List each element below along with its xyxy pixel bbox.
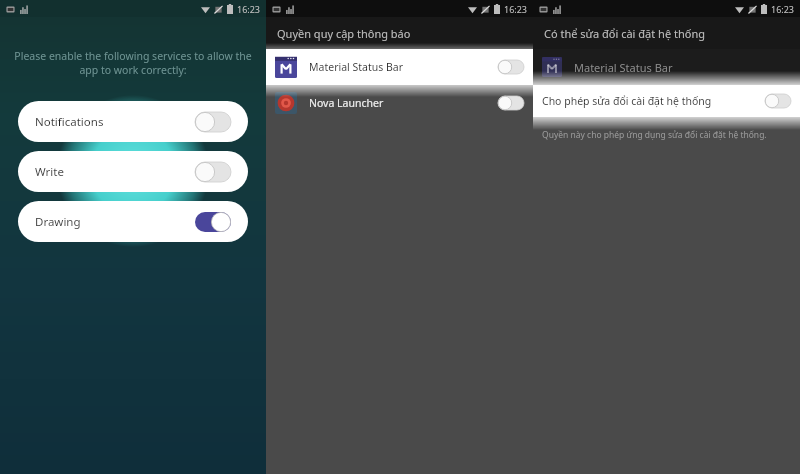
staticText: 16:23: [237, 3, 261, 15]
staticText: Material Status Bar: [574, 60, 673, 75]
staticText: Có thể sửa đổi cài đặt hệ thống: [544, 26, 705, 41]
staticText: Cho phép sửa đổi cài đặt hệ thống: [542, 94, 712, 108]
button[interactable]: Write: [18, 151, 248, 192]
button[interactable]: Drawing: [18, 201, 248, 242]
staticText: Please enable the following services to …: [14, 49, 252, 77]
staticText: Quyền này cho phép ứng dụng sửa đổi cài …: [542, 129, 767, 141]
staticText: Quyền quy cập thông báo: [277, 26, 411, 41]
staticText: Notifications: [35, 114, 104, 130]
button[interactable]: Cho phép sửa đổi cài đặt hệ thống: [533, 85, 800, 117]
staticText: 16:23: [504, 3, 528, 15]
staticText: Nova Launcher: [309, 96, 384, 110]
button[interactable]: Material Status Bar: [533, 49, 800, 85]
button[interactable]: Notifications: [18, 101, 248, 142]
staticText: Material Status Bar: [309, 60, 404, 74]
staticText: Drawing: [35, 214, 81, 230]
button[interactable]: Nova Launcher: [266, 85, 533, 121]
staticText: 16:23: [771, 3, 795, 15]
button[interactable]: Material Status Bar: [266, 49, 533, 85]
staticText: Write: [35, 164, 64, 180]
